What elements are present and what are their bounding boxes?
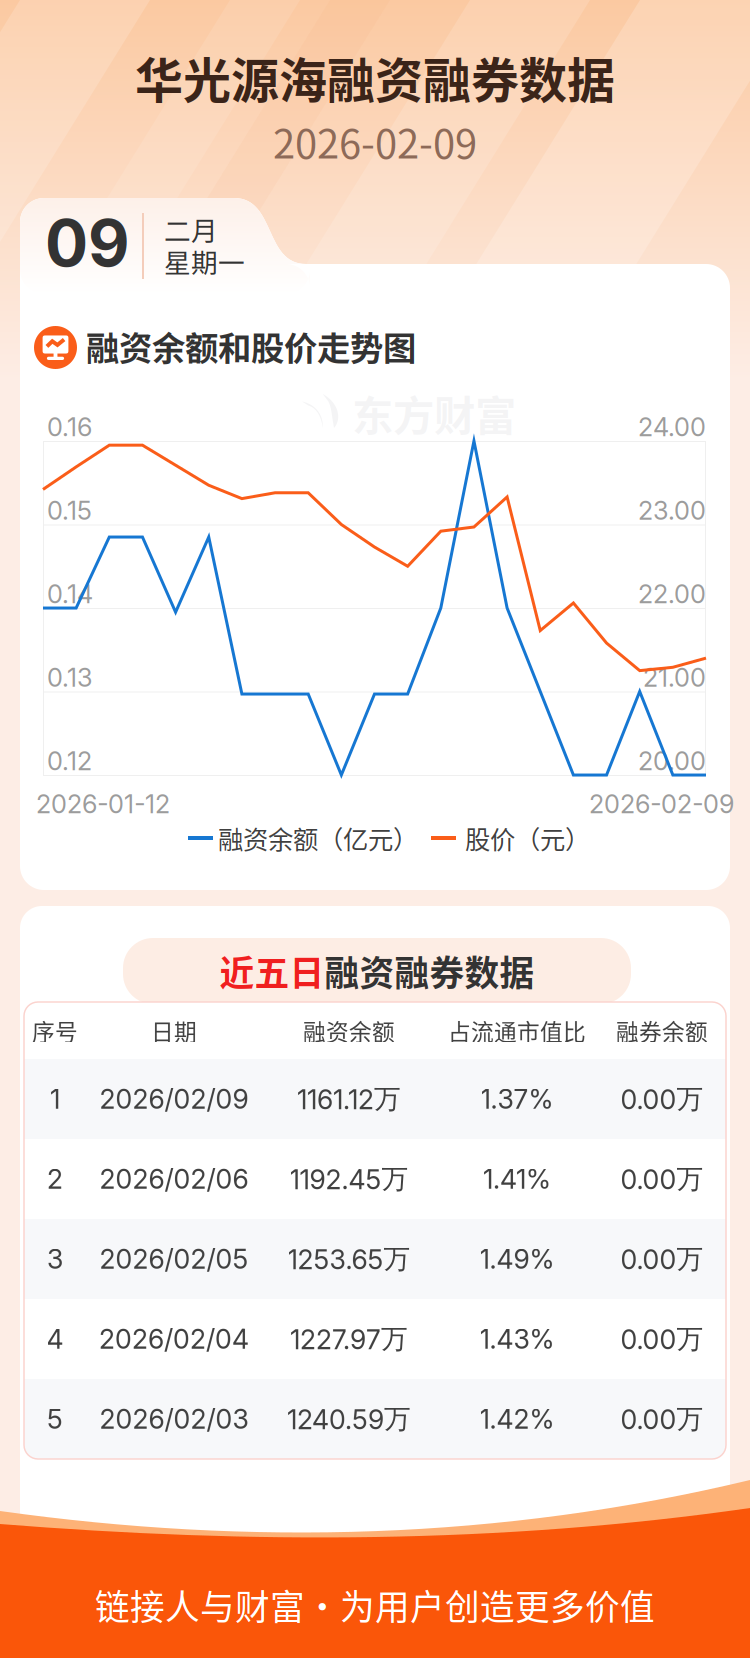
staticText: 2026-01-12: [36, 789, 170, 819]
staticText: 1192.45万: [289, 1162, 408, 1196]
staticText: 融资余额（亿元）: [218, 820, 418, 856]
staticText: 0.00万: [620, 1402, 703, 1436]
staticText: 0.14: [47, 579, 93, 609]
staticText: 2026/02/03: [99, 1403, 248, 1435]
staticText: 融资融券数据: [324, 946, 534, 996]
staticText: 0.00万: [620, 1162, 703, 1196]
staticText: 0.16: [47, 412, 92, 442]
staticText: 1227.97万: [290, 1322, 408, 1356]
staticText: 0.13: [47, 662, 93, 693]
staticText: 近五日: [219, 946, 324, 996]
staticText: 5: [47, 1403, 63, 1435]
staticText: 0.00万: [620, 1242, 703, 1276]
staticText: 24.00: [638, 412, 706, 442]
staticText: 1.43%: [479, 1323, 554, 1355]
staticText: 09: [45, 204, 130, 282]
staticText: 3: [47, 1243, 63, 1275]
staticText: 22.00: [638, 579, 706, 609]
staticText: 0.15: [47, 495, 92, 526]
staticText: 0.00万: [620, 1082, 703, 1116]
staticText: 二月: [164, 210, 218, 248]
staticText: 1161.12万: [297, 1082, 401, 1116]
staticText: 1.42%: [479, 1403, 554, 1435]
staticText: 1240.59万: [287, 1402, 411, 1436]
staticText: 2026/02/05: [99, 1243, 248, 1275]
staticText: 4: [46, 1323, 63, 1355]
staticText: 2026/02/04: [99, 1323, 249, 1355]
staticText: 0.00万: [620, 1322, 703, 1356]
staticText: 2: [47, 1163, 63, 1195]
staticText: 融资余额: [303, 1014, 395, 1047]
staticText: 日期: [151, 1014, 197, 1047]
staticText: 0.12: [47, 746, 92, 776]
staticText: 融券余额: [616, 1014, 708, 1047]
staticText: 华光源海融资融券数据: [135, 42, 615, 112]
staticText: 链接人与财富·为用户创造更多价值: [95, 1580, 655, 1630]
staticText: 序号: [32, 1014, 78, 1047]
staticText: 1.37%: [480, 1083, 553, 1115]
staticText: 1.41%: [483, 1163, 551, 1195]
staticText: 2026/02/09: [99, 1083, 248, 1115]
staticText: 融资余额和股价走势图: [86, 322, 416, 370]
staticText: 1: [50, 1083, 60, 1115]
staticText: 东方财富: [352, 383, 516, 443]
staticText: 占流通市值比: [448, 1014, 586, 1047]
staticText: 1253.65万: [287, 1242, 410, 1276]
staticText: 20.00: [638, 746, 706, 776]
staticText: 2026-02-09: [273, 112, 477, 170]
staticText: 23.00: [638, 495, 706, 526]
staticText: 2026-02-09: [589, 789, 734, 819]
staticText: 1.49%: [479, 1243, 554, 1275]
staticText: 股价（元）: [465, 820, 590, 856]
staticText: 21.00: [643, 662, 706, 693]
staticText: 星期一: [164, 242, 245, 280]
staticText: 2026/02/06: [99, 1163, 248, 1195]
